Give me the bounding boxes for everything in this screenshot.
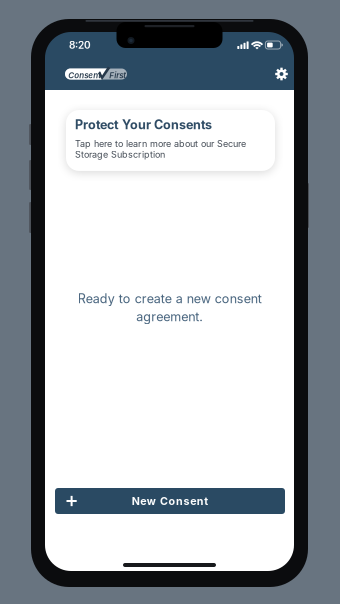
staticText: Consent	[68, 70, 101, 80]
staticText: First	[109, 70, 126, 80]
button[interactable]: New Consent	[55, 488, 285, 514]
staticText: Protect Your Consents	[75, 117, 212, 132]
staticText: New Consent	[132, 494, 208, 507]
staticText: Tap here to learn more about our Secure …	[75, 138, 246, 160]
staticText: 8:20	[69, 39, 91, 51]
button[interactable]: Consent	[65, 63, 133, 84]
button[interactable]: Protect Your Consents	[66, 110, 275, 171]
staticText: Ready to create a new consent agreement.	[77, 291, 261, 324]
button[interactable]: Settings	[268, 61, 294, 87]
